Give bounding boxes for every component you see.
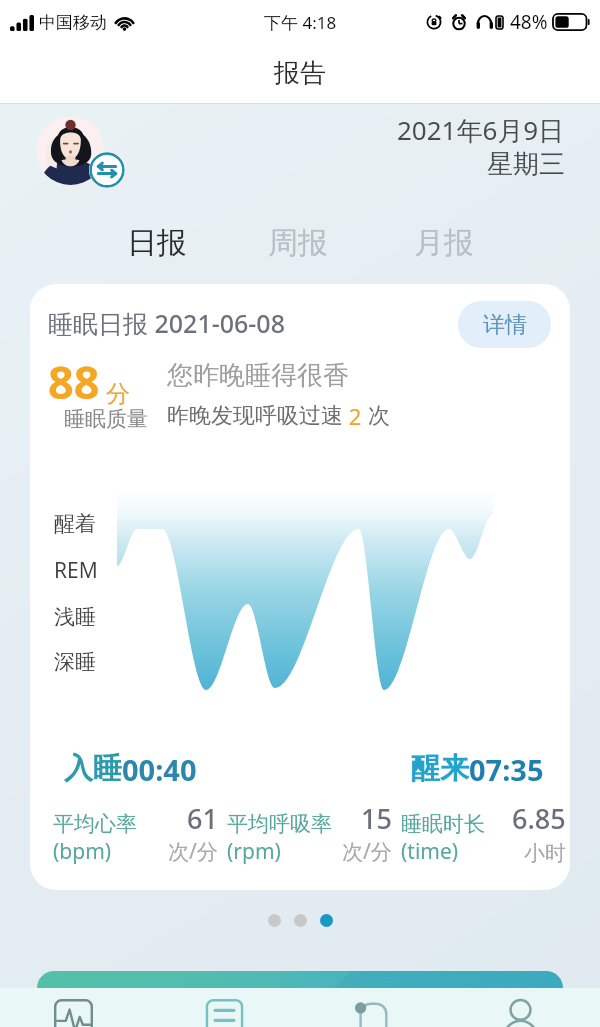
staticText: 入睡: [64, 750, 122, 787]
staticText: 您昨晚睡得很香: [167, 359, 349, 392]
staticText: 88: [48, 351, 100, 412]
button[interactable]: 月报: [402, 215, 486, 269]
staticText: 报告: [274, 57, 326, 90]
staticText: 深睡: [54, 649, 96, 675]
button[interactable]: 日报: [115, 215, 199, 269]
staticText: (time): [401, 837, 459, 866]
staticText: 分: [106, 379, 130, 409]
staticText: 周报: [268, 224, 328, 260]
staticText: 睡眠日报 2021-06-08: [48, 306, 285, 340]
button[interactable]: Switch profile: [36, 112, 126, 194]
staticText: 睡眠质量: [64, 406, 148, 432]
staticText: (bpm): [53, 837, 112, 866]
button[interactable]: Devices: [335, 988, 409, 1027]
staticText: 小时: [524, 840, 566, 866]
staticText: 中国移动: [39, 12, 107, 33]
staticText: 次/分: [342, 837, 392, 866]
staticText: 00:40: [122, 750, 197, 789]
staticText: 15: [361, 800, 392, 837]
button[interactable]: 详情: [458, 301, 551, 348]
staticText: 61: [187, 800, 218, 837]
staticText: 睡眠时长: [401, 811, 485, 837]
staticText: 48%: [510, 9, 548, 35]
staticText: REM: [54, 556, 98, 585]
staticText: 次: [368, 402, 390, 430]
staticText: (rpm): [227, 837, 281, 866]
staticText: 日报: [127, 224, 187, 260]
staticText: 平均心率: [53, 811, 137, 837]
staticText: 07:35: [469, 750, 544, 789]
staticText: 昨晚发现呼吸过速: [167, 402, 343, 430]
button[interactable]: Profile: [484, 988, 558, 1027]
staticText: 2021年6月9日: [397, 112, 565, 148]
staticText: 详情: [483, 311, 527, 339]
button[interactable]: 周报: [256, 215, 340, 269]
staticText: 月报: [414, 224, 474, 260]
staticText: 6.85: [512, 800, 566, 837]
staticText: 浅睡: [54, 604, 96, 630]
staticText: 平均呼吸率: [227, 811, 332, 837]
staticText: 星期三: [487, 148, 565, 181]
button[interactable]: Records: [188, 988, 262, 1027]
staticText: 醒来: [411, 750, 469, 787]
button[interactable]: Reports: [37, 988, 111, 1027]
staticText: 2: [343, 401, 368, 431]
staticText: 醒着: [54, 511, 96, 537]
staticText: 次/分: [168, 837, 218, 866]
staticText: 下午 4:18: [264, 11, 337, 34]
